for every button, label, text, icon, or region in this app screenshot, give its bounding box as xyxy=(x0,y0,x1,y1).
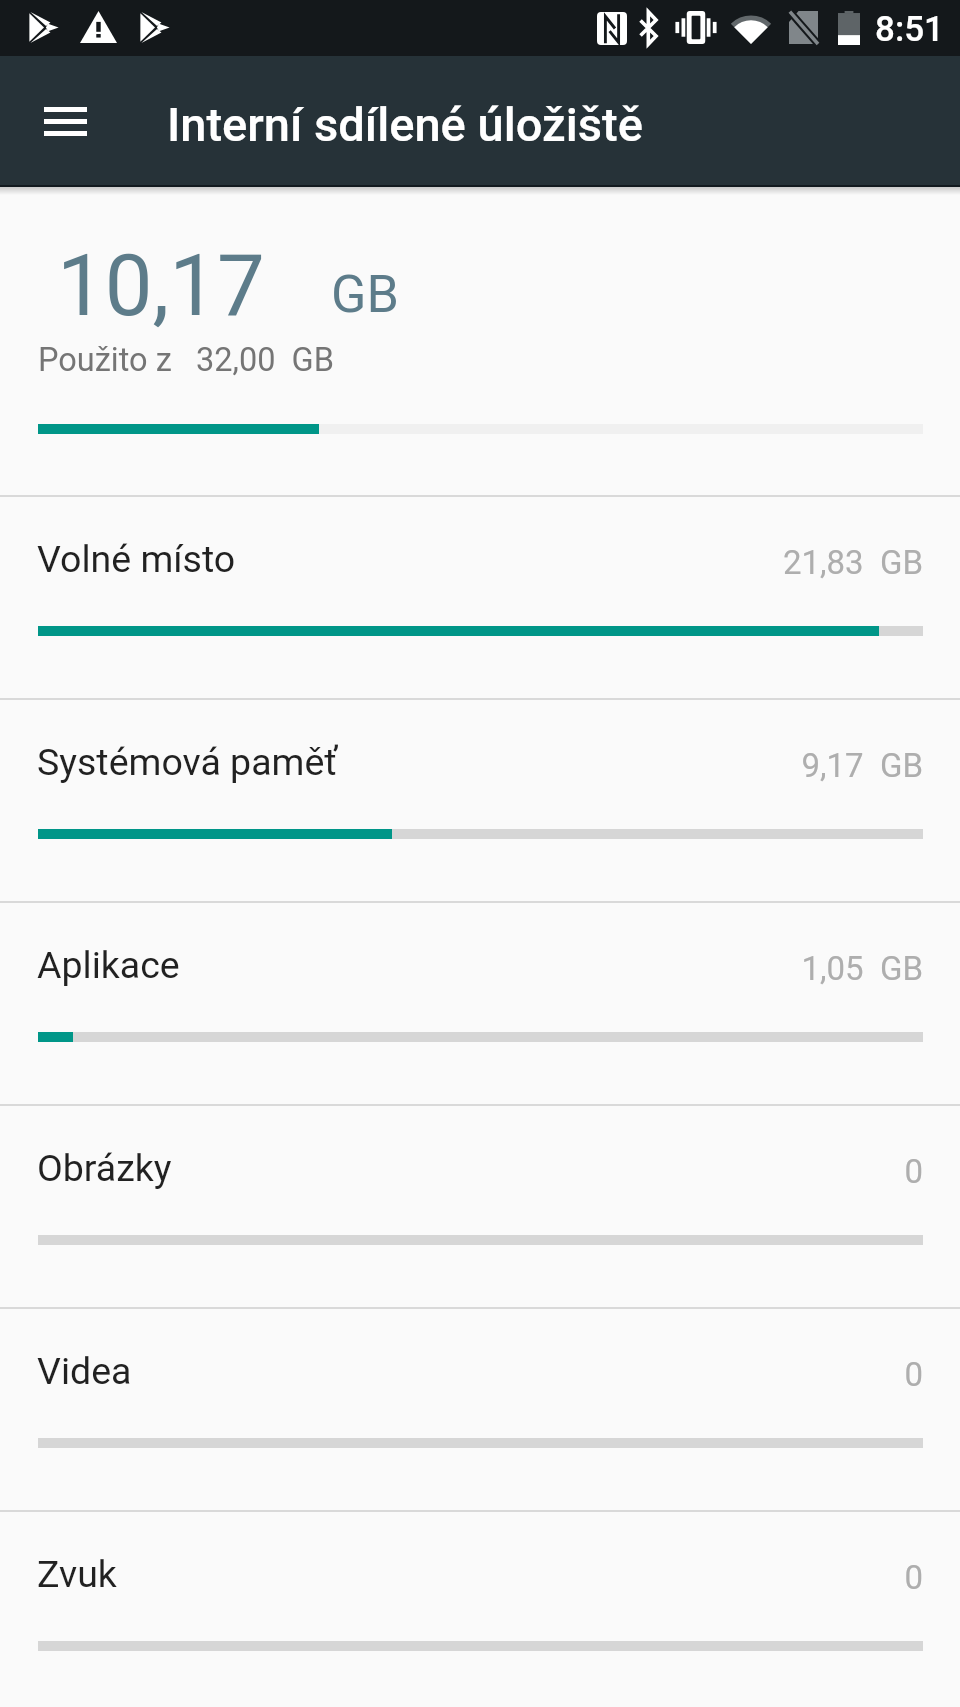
staticText: 21,83 GB xyxy=(782,543,923,582)
staticText: 0 xyxy=(904,1355,923,1394)
staticText: Volné místo xyxy=(37,537,236,581)
staticText: GB xyxy=(331,264,399,325)
staticText: 0 xyxy=(904,1558,923,1597)
button[interactable]: Zvuk xyxy=(0,1512,960,1707)
staticText: Použito z 32,00 GB xyxy=(38,341,334,379)
staticText: 9,17 GB xyxy=(801,746,923,785)
staticText: 8:51 xyxy=(875,9,944,50)
staticText: Aplikace xyxy=(37,943,180,987)
staticText: 1,05 GB xyxy=(801,949,923,988)
staticText: Videa xyxy=(37,1349,132,1393)
button[interactable]: Aplikace xyxy=(0,903,960,1104)
button[interactable]: Systémová paměť xyxy=(0,700,960,901)
button[interactable]: Obrázky xyxy=(0,1106,960,1307)
staticText: 0 xyxy=(904,1152,923,1191)
staticText: 10,17 xyxy=(57,236,265,336)
staticText: Interní sdílené úložiště xyxy=(167,97,643,152)
staticText: Zvuk xyxy=(37,1552,117,1596)
staticText: Obrázky xyxy=(37,1146,172,1190)
button[interactable]: Volné místo xyxy=(0,497,960,698)
staticText: Systémová paměť xyxy=(37,740,338,784)
button[interactable]: Open navigation menu xyxy=(22,78,108,164)
button[interactable]: Videa xyxy=(0,1309,960,1510)
